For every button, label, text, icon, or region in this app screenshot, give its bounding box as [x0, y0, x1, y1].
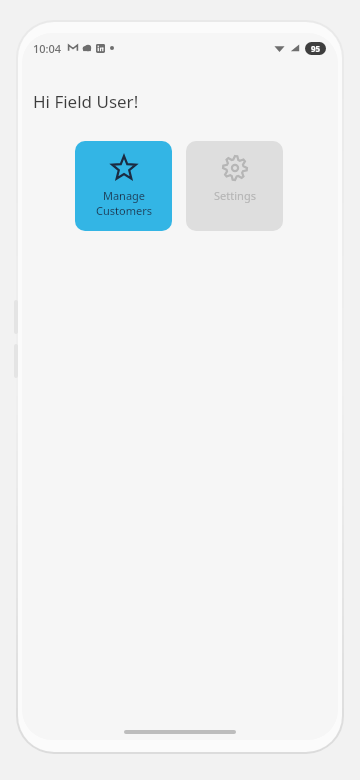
staticText: Hi Field User!	[33, 90, 139, 113]
button[interactable]: Manage Customers	[75, 141, 172, 231]
staticText: Manage Customers	[96, 188, 152, 218]
staticText: Settings	[214, 188, 256, 203]
staticText: 95	[311, 43, 321, 54]
button[interactable]: Settings	[186, 141, 283, 231]
staticText: 10:04	[33, 41, 62, 56]
